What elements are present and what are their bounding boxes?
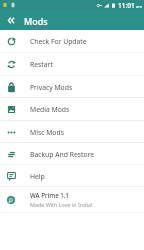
staticText: Help — [30, 172, 45, 181]
staticText: Made With Love in India! — [30, 201, 93, 208]
button[interactable]: Misc Mods — [0, 121, 144, 143]
staticText: Misc Mods — [30, 128, 64, 137]
button[interactable]: Backup And Restore — [0, 143, 144, 165]
staticText: am — [136, 4, 142, 9]
button[interactable]: Media Mods — [0, 98, 144, 121]
staticText: Privacy Mods — [30, 83, 73, 92]
staticText: WA Prime 1.1 — [30, 191, 70, 199]
button[interactable]: Back — [0, 10, 22, 30]
staticText: Mods — [24, 15, 48, 27]
staticText: Backup And Restore — [30, 150, 95, 159]
button[interactable]: Privacy Mods — [0, 76, 144, 98]
button[interactable]: Help — [0, 165, 144, 187]
staticText: Media Mods — [30, 105, 70, 114]
button[interactable]: Check For Update — [0, 30, 144, 53]
staticText: Check For Update — [30, 37, 87, 46]
button[interactable]: WA Prime 1.1 — [0, 187, 144, 213]
staticText: 11:01 — [118, 1, 135, 10]
button[interactable]: Restart — [0, 53, 144, 76]
staticText: Restart — [30, 60, 53, 69]
